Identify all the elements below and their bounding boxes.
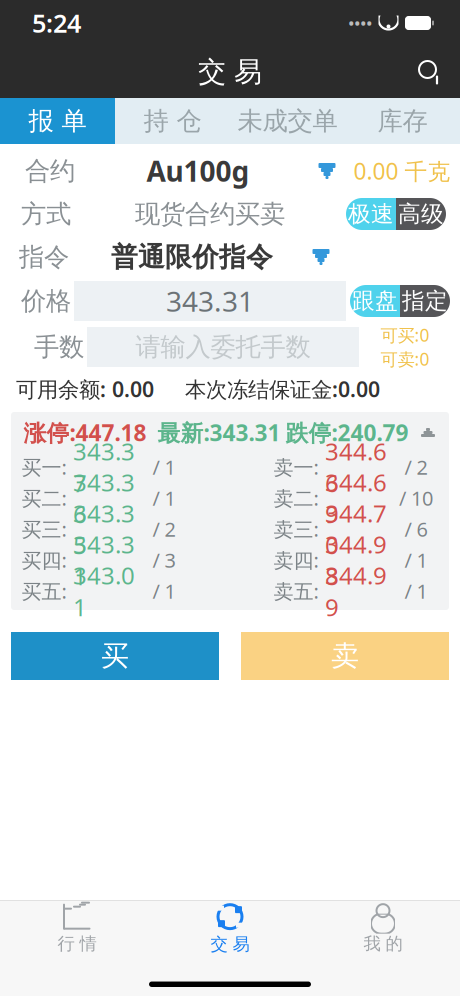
button[interactable]: 343.31 (74, 281, 346, 321)
staticText: 买二: (21, 485, 66, 511)
staticText: •••• (348, 13, 372, 33)
staticText: 交 易 (198, 55, 262, 89)
staticText: 可买:0 (380, 323, 429, 346)
button[interactable]: 库存 (345, 98, 460, 144)
staticText: / 3 (152, 547, 175, 573)
button[interactable]: 收起行情 (411, 417, 445, 447)
staticText: 方式 (21, 198, 71, 229)
staticText: / 1 (152, 454, 175, 480)
staticText: 5:24 (32, 6, 81, 40)
staticText: 343.35 (73, 497, 135, 561)
staticText: Au100g (146, 152, 249, 190)
staticText: 涨停:447.18 (23, 417, 146, 447)
staticText: / 10 (399, 485, 433, 511)
button[interactable]: 指定 (400, 285, 450, 317)
staticText: 344.69 (325, 466, 387, 530)
staticText: 我 的 (363, 933, 402, 954)
staticText: 指令 (19, 241, 69, 272)
staticText: 344.70 (325, 497, 387, 561)
button[interactable]: 搜索 (408, 50, 452, 94)
staticText: 344.99 (325, 559, 387, 623)
staticText: 343.31 (166, 282, 254, 320)
staticText: 价格 (21, 285, 71, 316)
button[interactable]: 跟盘 (350, 285, 400, 317)
staticText: 344.66 (325, 435, 387, 499)
staticText: 请输入委托手数 (135, 331, 310, 362)
staticText: 现货合约买卖 (135, 198, 285, 229)
button[interactable]: 高级 (396, 198, 446, 230)
staticText: 普通限价指令 (111, 241, 273, 273)
staticText: 343.01 (73, 559, 135, 623)
staticText: 指定 (402, 287, 448, 315)
staticText: 可用余额: 0.00 (16, 375, 154, 403)
staticText: / 2 (152, 516, 175, 542)
staticText: 买五: (21, 578, 66, 604)
staticText: 跟盘 (352, 287, 398, 315)
staticText: 合约 (25, 155, 75, 186)
staticText: 跌停:240.79 (285, 417, 408, 447)
staticText: 报 单 (28, 105, 86, 136)
staticText: 本次冻结保证金:0.00 (185, 375, 380, 403)
button[interactable]: 未成交单 (230, 98, 345, 144)
staticText: / 1 (152, 578, 175, 604)
button[interactable]: 请输入委托手数 (87, 327, 359, 367)
staticText: 344.98 (325, 528, 387, 592)
staticText: 买一: (21, 454, 66, 480)
staticText: 高级 (398, 200, 444, 228)
button[interactable]: 普通限价指令 (72, 237, 344, 277)
staticText: 买四: (21, 547, 66, 573)
staticText: 卖四: (273, 547, 318, 573)
staticText: 交 易 (210, 934, 249, 955)
button[interactable]: 极速 (346, 198, 396, 230)
staticText: 卖五: (273, 578, 318, 604)
button[interactable]: Au100g (78, 151, 350, 191)
button[interactable]: 卖 (241, 632, 449, 680)
staticText: 343.37 (73, 435, 135, 499)
staticText: 卖 (331, 639, 359, 673)
staticText: 卖二: (273, 485, 318, 511)
staticText: 343.31 (73, 528, 135, 592)
button[interactable]: 行 情 (0, 901, 153, 957)
staticText: 未成交单 (237, 105, 337, 136)
staticText: 卖三: (273, 516, 318, 542)
staticText: / 6 (404, 516, 427, 542)
staticText: / 1 (152, 485, 175, 511)
staticText: 持 仓 (143, 105, 201, 136)
button[interactable]: 买 (11, 632, 219, 680)
staticText: 手数 (34, 331, 84, 362)
staticText: 可卖:0 (380, 347, 429, 370)
staticText: / 2 (404, 454, 427, 480)
staticText: 343.36 (73, 466, 135, 530)
button[interactable]: 我 的 (306, 901, 459, 957)
staticText: 0.00 千克 (353, 156, 450, 186)
staticText: 行 情 (57, 933, 96, 954)
staticText: 库存 (377, 105, 427, 136)
staticText: 最新:343.31 (157, 417, 280, 447)
staticText: 极速 (348, 200, 394, 228)
button[interactable]: 交 易 (153, 901, 306, 957)
staticText: / 1 (404, 547, 427, 573)
staticText: 卖一: (273, 454, 318, 480)
button[interactable]: 持 仓 (115, 98, 230, 144)
staticText: 买三: (21, 516, 66, 542)
staticText: 买 (101, 639, 129, 673)
button[interactable]: 报 单 (0, 98, 115, 144)
staticText: / 1 (404, 578, 427, 604)
